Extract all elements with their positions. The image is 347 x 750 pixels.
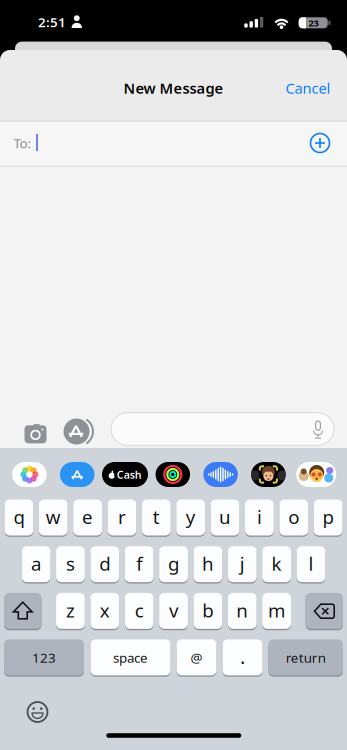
button[interactable]: f	[125, 545, 154, 583]
button[interactable]: Memoji Stickers	[251, 462, 286, 487]
staticText: n	[236, 598, 248, 623]
staticText: Cash	[117, 467, 142, 482]
staticText: t	[153, 504, 160, 529]
staticText: space	[113, 649, 148, 666]
button[interactable]: d	[90, 545, 119, 583]
button[interactable]: .	[222, 639, 262, 677]
button[interactable]: w	[39, 499, 68, 537]
button[interactable]: space	[90, 639, 170, 677]
staticText: w	[46, 504, 61, 529]
staticText: New Message	[123, 78, 223, 98]
staticText: p	[323, 504, 334, 529]
button[interactable]: p	[314, 499, 342, 537]
button[interactable]: Shift	[4, 592, 41, 630]
staticText: z	[66, 598, 75, 623]
staticText: b	[202, 598, 213, 623]
button[interactable]: i	[245, 499, 274, 537]
button[interactable]: a	[22, 545, 50, 583]
button[interactable]: @	[176, 639, 216, 677]
button[interactable]: g	[159, 545, 188, 583]
button[interactable]: r	[108, 499, 136, 537]
button[interactable]: Add Contact	[307, 130, 333, 156]
staticText: @	[190, 649, 202, 666]
button[interactable]: Fitness	[156, 462, 190, 487]
staticText: To:	[13, 134, 31, 152]
staticText: g	[168, 551, 179, 576]
button[interactable]: App Store	[60, 462, 94, 487]
button[interactable]: Return	[268, 639, 343, 677]
button[interactable]: o	[279, 499, 308, 537]
button[interactable]: Stickers	[296, 462, 336, 487]
staticText: m	[268, 598, 285, 623]
staticText: Cancel	[285, 78, 330, 98]
staticText: v	[169, 598, 178, 623]
staticText: 123	[32, 649, 56, 666]
staticText: q	[13, 504, 24, 529]
staticText: e	[82, 504, 93, 529]
staticText: .	[240, 647, 244, 668]
button[interactable]: Music	[203, 462, 238, 487]
button[interactable]: m	[262, 592, 291, 630]
button[interactable]: Cancel	[285, 78, 330, 98]
button[interactable]: v	[159, 592, 188, 630]
staticText: j	[240, 551, 245, 576]
button[interactable]: u	[211, 499, 239, 537]
staticText: i	[257, 504, 262, 529]
staticText: a	[31, 551, 41, 576]
staticText: h	[202, 551, 214, 576]
staticText: y	[186, 504, 196, 529]
button[interactable]: Emoji	[25, 700, 49, 724]
button[interactable]: t	[142, 499, 171, 537]
button[interactable]: Message	[110, 412, 334, 446]
button[interactable]: y	[176, 499, 205, 537]
button[interactable]: Apple Cash	[102, 462, 148, 487]
button[interactable]: Apps	[62, 415, 96, 447]
button[interactable]: Camera	[22, 420, 48, 444]
button[interactable]: j	[228, 545, 257, 583]
button[interactable]: b	[193, 592, 222, 630]
staticText: return	[286, 649, 326, 666]
button[interactable]: Delete	[305, 592, 343, 630]
button[interactable]: c	[125, 592, 154, 630]
staticText: o	[288, 504, 299, 529]
staticText: u	[219, 504, 231, 529]
button[interactable]: Numbers	[4, 639, 84, 677]
button[interactable]: s	[56, 545, 85, 583]
staticText: r	[118, 504, 126, 529]
button[interactable]: k	[262, 545, 291, 583]
button[interactable]: Dictate	[310, 419, 326, 439]
button[interactable]: e	[73, 499, 102, 537]
staticText: s	[66, 551, 75, 576]
staticText: 23	[309, 17, 319, 29]
button[interactable]: z	[56, 592, 85, 630]
staticText: f	[136, 551, 142, 576]
button[interactable]: q	[4, 499, 33, 537]
staticText: c	[135, 598, 144, 623]
button[interactable]: l	[297, 545, 325, 583]
staticText: l	[308, 551, 313, 576]
staticText: k	[272, 551, 282, 576]
staticText: x	[100, 598, 110, 623]
button[interactable]: h	[193, 545, 222, 583]
button[interactable]: x	[90, 592, 119, 630]
staticText: 2:51	[38, 13, 66, 31]
staticText: d	[99, 551, 110, 576]
button[interactable]: Photos	[12, 462, 47, 487]
button[interactable]: n	[228, 592, 257, 630]
